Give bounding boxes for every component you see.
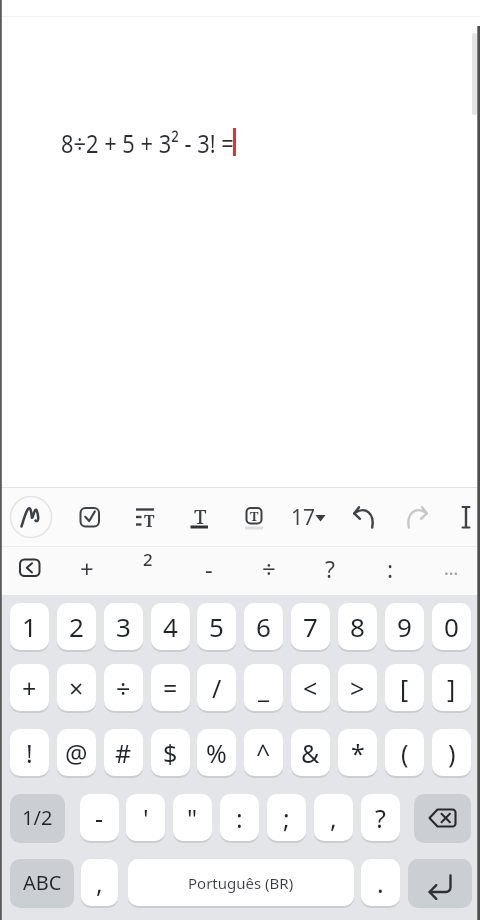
staticText: ÷ — [116, 671, 131, 705]
button[interactable] — [66, 493, 114, 541]
button[interactable] — [394, 493, 442, 541]
button[interactable]: : — [350, 542, 430, 594]
button[interactable]: _ — [244, 664, 283, 711]
button[interactable]: ] — [432, 664, 471, 711]
button[interactable]: . — [361, 859, 400, 906]
staticText: ] — [447, 671, 456, 705]
staticText: ! — [26, 736, 33, 770]
staticText: - — [95, 801, 104, 835]
button[interactable] — [408, 859, 472, 906]
staticText: _ — [258, 671, 270, 705]
staticText: # — [115, 736, 132, 770]
button[interactable]: - — [169, 542, 249, 594]
staticText: 8÷2 + 5 + 3² - 3! = — [61, 125, 234, 160]
staticText: $ — [163, 736, 178, 770]
button[interactable]: 5 — [197, 603, 236, 650]
staticText: < — [303, 671, 318, 705]
button[interactable]: 9 — [385, 603, 424, 650]
button[interactable]: 3 — [104, 603, 143, 650]
button[interactable]: + — [47, 542, 127, 594]
button[interactable]: ² — [108, 541, 188, 593]
button[interactable]: , — [314, 794, 353, 841]
button[interactable]: 6 — [244, 603, 283, 650]
button[interactable]: - — [80, 794, 119, 841]
staticText: , — [96, 866, 103, 900]
button[interactable]: > — [338, 664, 377, 711]
button[interactable] — [230, 493, 278, 541]
button[interactable]: + — [10, 664, 49, 711]
button[interactable]: ? — [290, 542, 370, 594]
staticText: 8 — [350, 609, 365, 644]
staticText: ² — [143, 548, 153, 586]
button[interactable]: / — [197, 664, 236, 711]
staticText: > — [350, 671, 365, 705]
button[interactable]: * — [338, 729, 377, 776]
staticText: ' — [143, 801, 149, 835]
staticText: ? — [375, 801, 386, 835]
staticText: & — [301, 736, 320, 770]
button[interactable]: × — [57, 664, 96, 711]
button[interactable]: 2 — [57, 603, 96, 650]
button[interactable]: … — [411, 542, 480, 594]
button[interactable]: ' — [126, 794, 165, 841]
staticText: : — [387, 553, 394, 584]
button[interactable] — [340, 493, 388, 541]
staticText: + — [80, 552, 94, 585]
staticText: 6 — [256, 609, 271, 644]
button[interactable]: : — [220, 794, 259, 841]
button[interactable]: 4 — [151, 603, 190, 650]
staticText: - — [205, 552, 213, 585]
button[interactable]: < — [291, 664, 330, 711]
staticText: 5 — [209, 609, 224, 644]
staticText: 2 — [69, 609, 84, 644]
button[interactable]: ÷ — [104, 664, 143, 711]
button[interactable]: Português (BR) — [128, 859, 354, 906]
button[interactable]: 17 — [263, 491, 343, 543]
staticText: T — [250, 507, 259, 525]
button[interactable]: " — [173, 794, 212, 841]
button[interactable]: % — [197, 729, 236, 776]
button[interactable]: 1/2 — [10, 794, 65, 841]
staticText: . — [377, 866, 384, 900]
staticText: 17 — [291, 503, 316, 532]
button[interactable] — [176, 493, 224, 541]
button[interactable]: ^ — [244, 729, 283, 776]
button[interactable]: & — [291, 729, 330, 776]
button[interactable]: ; — [267, 794, 306, 841]
button[interactable]: [ — [385, 664, 424, 711]
button[interactable]: ) — [432, 729, 471, 776]
button[interactable]: ? — [361, 794, 400, 841]
button[interactable] — [8, 550, 52, 590]
staticText: + — [22, 671, 37, 705]
staticText: 0 — [444, 609, 459, 644]
staticText: ( — [401, 736, 409, 770]
button[interactable] — [7, 493, 55, 541]
staticText: " — [187, 801, 198, 835]
button[interactable] — [414, 794, 471, 841]
staticText: [ — [400, 671, 409, 705]
button[interactable]: 8 — [338, 603, 377, 650]
staticText: : — [236, 801, 243, 835]
button[interactable]: ! — [10, 729, 49, 776]
button[interactable]: = — [151, 664, 190, 711]
button[interactable]: 7 — [291, 603, 330, 650]
staticText: … — [444, 556, 459, 581]
button[interactable]: ÷ — [229, 542, 309, 594]
button[interactable]: , — [81, 859, 118, 906]
button[interactable]: # — [104, 729, 143, 776]
button[interactable] — [121, 493, 169, 541]
staticText: 9 — [397, 609, 412, 644]
button[interactable]: 0 — [432, 603, 471, 650]
staticText: @ — [65, 736, 88, 770]
button[interactable]: ( — [385, 729, 424, 776]
staticText: 3 — [116, 609, 131, 644]
button[interactable]: 1 — [10, 603, 49, 650]
staticText: , — [330, 801, 337, 835]
staticText: 7 — [303, 609, 318, 644]
staticText: Português (BR) — [188, 873, 294, 893]
button[interactable] — [441, 493, 480, 541]
staticText: / — [212, 671, 222, 705]
button[interactable]: ABC — [10, 859, 74, 906]
button[interactable]: $ — [151, 729, 190, 776]
button[interactable]: @ — [57, 729, 96, 776]
